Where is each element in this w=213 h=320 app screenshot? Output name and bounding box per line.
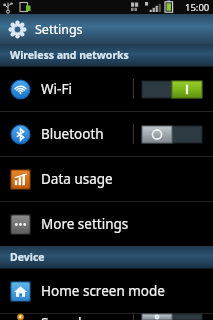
staticText: Data usage xyxy=(41,170,205,188)
button[interactable]: Wi-Fi xyxy=(0,67,213,111)
button[interactable]: Switch off xyxy=(142,126,202,143)
button[interactable]: Home screen mode xyxy=(0,269,213,313)
button[interactable]: Data usage xyxy=(0,157,213,201)
staticText: Device xyxy=(10,250,45,264)
staticText: Bluetooth xyxy=(41,125,129,143)
button[interactable]: Switch off xyxy=(142,314,202,320)
button[interactable]: Bluetooth xyxy=(0,112,213,156)
staticText: 15:00 xyxy=(185,1,210,14)
staticText: Settings xyxy=(35,21,83,38)
staticText: Home screen mode xyxy=(41,282,205,300)
staticText: Wi-Fi xyxy=(41,80,129,98)
button[interactable]: More settings xyxy=(0,202,213,246)
staticText: More settings xyxy=(41,215,205,233)
button[interactable]: Switch on xyxy=(142,81,202,98)
button[interactable]: Settings xyxy=(0,14,213,44)
staticText: Sound xyxy=(41,314,129,320)
button[interactable]: Sound xyxy=(0,314,213,320)
staticText: Wireless and networks xyxy=(10,48,129,62)
